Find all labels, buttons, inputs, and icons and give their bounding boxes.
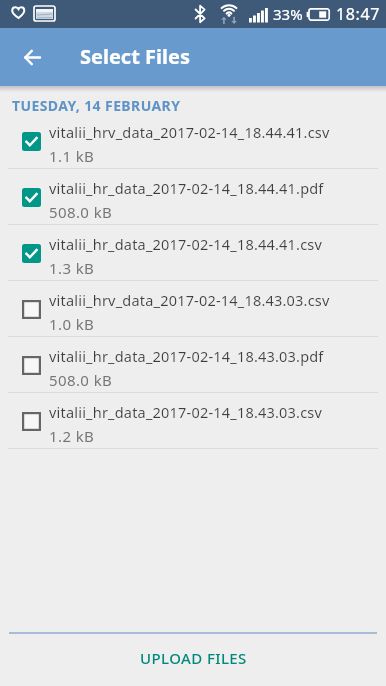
staticText: Select Files [80, 43, 190, 70]
button[interactable]: vitalii_hrv_data_2017-02-14_18.44.41.csv [0, 113, 386, 169]
staticText: TUESDAY, 14 FEBRUARY [12, 96, 181, 115]
button[interactable]: vitalii_hr_data_2017-02-14_18.43.03.csv [0, 393, 386, 449]
staticText: vitalii_hrv_data_2017-02-14_18.43.03.csv [49, 290, 330, 310]
staticText: vitalii_hr_data_2017-02-14_18.44.41.csv [49, 234, 323, 254]
staticText: 1.2 kB [49, 426, 95, 446]
staticText: vitalii_hr_data_2017-02-14_18.44.41.pdf [49, 178, 324, 198]
staticText: 1.1 kB [49, 146, 95, 166]
button[interactable] [8, 33, 56, 81]
staticText: 1.0 kB [49, 314, 95, 334]
staticText: 1.3 kB [49, 258, 95, 278]
staticText: vitalii_hrv_data_2017-02-14_18.44.41.csv [49, 122, 330, 142]
button[interactable]: vitalii_hrv_data_2017-02-14_18.43.03.csv [0, 281, 386, 337]
staticText: 18:47 [336, 3, 380, 25]
button[interactable]: vitalii_hr_data_2017-02-14_18.43.03.pdf [0, 337, 386, 393]
staticText: vitalii_hr_data_2017-02-14_18.43.03.pdf [49, 346, 324, 366]
button[interactable]: UPLOAD FILES [0, 634, 386, 686]
staticText: 508.0 kB [49, 370, 113, 390]
button[interactable]: vitalii_hr_data_2017-02-14_18.44.41.csv [0, 225, 386, 281]
staticText: 33% [273, 4, 303, 24]
staticText: UPLOAD FILES [140, 648, 247, 668]
staticText: 508.0 kB [49, 202, 113, 222]
staticText: vitalii_hr_data_2017-02-14_18.43.03.csv [49, 402, 323, 422]
button[interactable]: vitalii_hr_data_2017-02-14_18.44.41.pdf [0, 169, 386, 225]
